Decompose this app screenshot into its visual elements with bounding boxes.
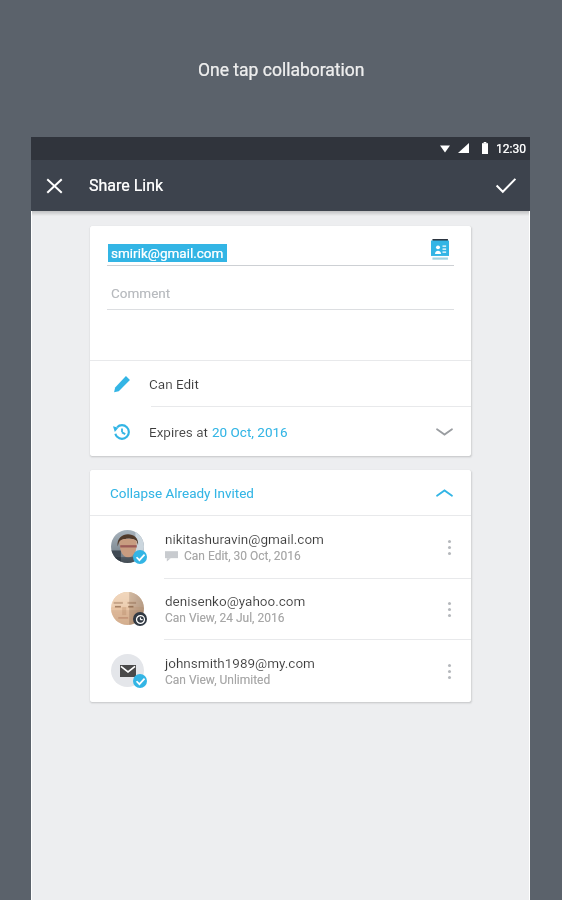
staticText: One tap collaboration — [198, 60, 365, 81]
button[interactable]: More options — [432, 523, 466, 571]
button[interactable]: nikitashuravin@gmail.com — [90, 516, 471, 578]
button[interactable]: More options — [432, 585, 466, 633]
staticText: Collapse Already Invited — [110, 485, 254, 501]
staticText: Can View, Unlimited — [165, 673, 271, 687]
staticText: Can Edit — [149, 376, 199, 392]
staticText: Comment — [111, 285, 171, 301]
staticText: 20 Oct, 2016 — [212, 424, 288, 440]
staticText: 12:30 — [496, 142, 526, 156]
button[interactable]: johnsmith1989@my.com — [90, 640, 471, 702]
button[interactable]: Expires at — [90, 407, 471, 456]
staticText: johnsmith1989@my.com — [165, 655, 315, 671]
button[interactable]: Can Edit — [90, 361, 471, 406]
staticText: smirik@gmail.com — [111, 245, 224, 261]
button[interactable]: Close — [31, 160, 78, 211]
staticText: Expires at — [149, 424, 212, 440]
button[interactable]: denisenko@yahoo.com — [90, 579, 471, 639]
button[interactable]: Pick contact — [427, 237, 453, 263]
staticText: Can Edit, 30 Oct, 2016 — [184, 549, 301, 563]
button[interactable]: Confirm — [482, 160, 530, 211]
staticText: denisenko@yahoo.com — [165, 593, 306, 609]
staticText: nikitashuravin@gmail.com — [165, 531, 324, 547]
button[interactable]: More options — [432, 647, 466, 695]
staticText: Can View, 24 Jul, 2016 — [165, 611, 285, 625]
staticText: Share Link — [89, 176, 164, 195]
button[interactable]: Collapse Already Invited — [90, 470, 471, 515]
